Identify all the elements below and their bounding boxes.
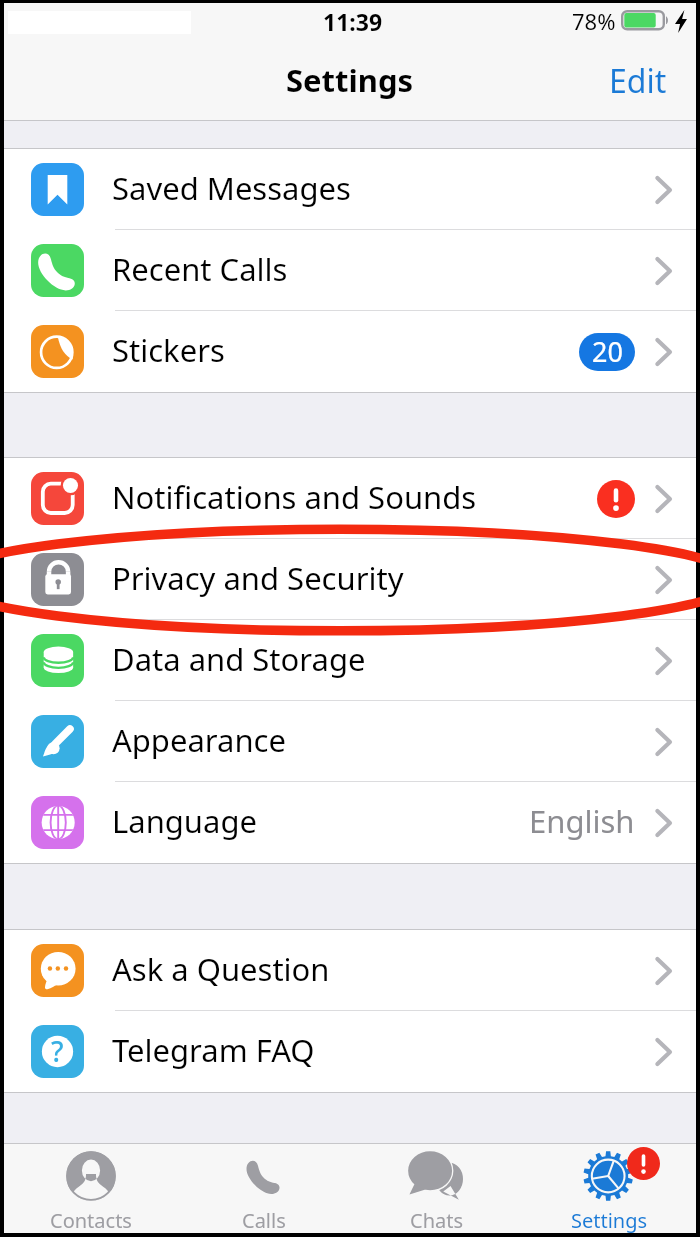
button[interactable]: Stickers [4,311,696,392]
button[interactable]: Privacy and Security [4,539,696,620]
button[interactable]: Calls [177,1143,350,1233]
staticText: Appearance [112,719,286,761]
staticText: Saved Messages [112,167,351,209]
staticText: Edit [609,59,667,103]
staticText: 11:39 [323,6,383,37]
staticText: ? [51,1032,64,1070]
staticText: Chats [410,1207,464,1234]
staticText: Settings [571,1207,648,1234]
button[interactable]: Data and Storage [4,620,696,701]
button[interactable]: Appearance [4,701,696,782]
button[interactable]: Chats [350,1143,523,1233]
staticText: Privacy and Security [112,557,404,599]
button[interactable]: ? [4,1011,696,1092]
button[interactable]: Notifications and Sounds [4,458,696,539]
staticText: Settings [286,59,414,101]
staticText: Language [112,800,257,842]
button[interactable]: Recent Calls [4,230,696,311]
staticText: Recent Calls [112,248,288,290]
button[interactable]: Ask a Question [4,930,696,1011]
staticText: 20 [592,333,623,370]
button[interactable]: Saved Messages [4,149,696,230]
button[interactable]: Language [4,782,696,863]
staticText: Stickers [112,329,225,371]
staticText: Telegram FAQ [112,1029,315,1071]
staticText: 78% [572,6,616,36]
staticText: Calls [242,1207,286,1234]
staticText: Notifications and Sounds [112,476,477,518]
staticText: English [529,800,635,842]
staticText: Ask a Question [112,948,330,990]
button[interactable]: Edit [585,49,696,113]
button[interactable]: Settings [523,1143,696,1233]
staticText: Data and Storage [112,638,366,680]
staticText: Contacts [50,1207,132,1234]
button[interactable]: Contacts [4,1143,177,1233]
